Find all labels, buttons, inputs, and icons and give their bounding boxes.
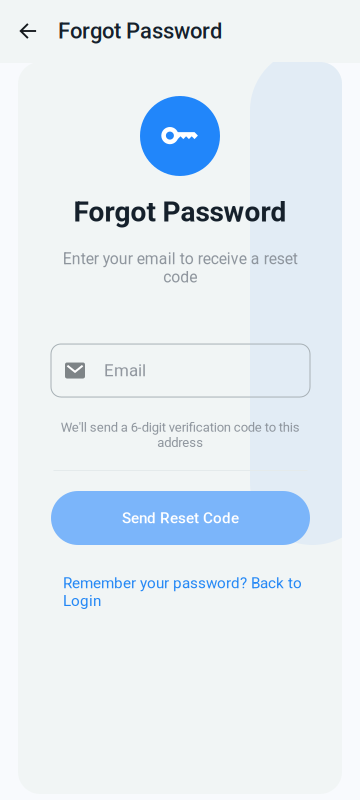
button[interactable]: Remember your password? Back to Login bbox=[63, 574, 303, 610]
staticText: Forgot Password bbox=[73, 196, 286, 228]
staticText: Remember your password? Back to Login bbox=[63, 574, 302, 610]
button[interactable]: Send Reset Code bbox=[51, 491, 310, 545]
button[interactable]: Back bbox=[6, 9, 50, 53]
staticText: Email bbox=[104, 361, 146, 380]
staticText: We'll send a 6-digit verification code t… bbox=[60, 420, 299, 450]
staticText: Send Reset Code bbox=[122, 509, 239, 527]
staticText: Enter your email to receive a reset code bbox=[62, 250, 297, 286]
staticText: Forgot Password bbox=[58, 18, 222, 44]
